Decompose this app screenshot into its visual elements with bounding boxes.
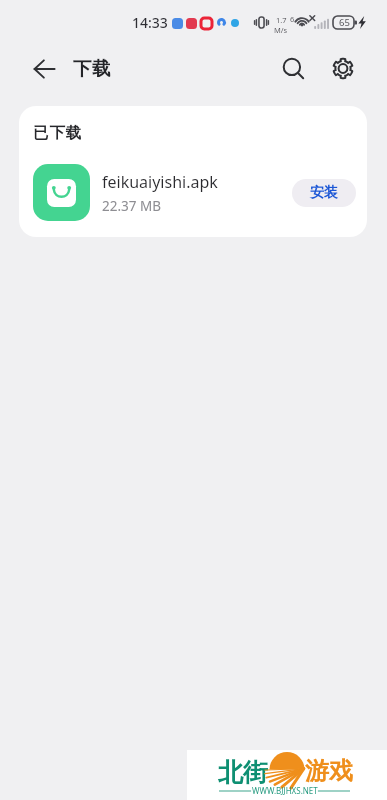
button[interactable]: 安装: [292, 179, 356, 207]
staticText: feikuaiyishi.apk: [102, 171, 218, 193]
staticText: 65: [339, 16, 350, 29]
staticText: 北街: [218, 757, 268, 788]
staticText: 1.7: [276, 15, 287, 25]
staticText: M/s: [274, 25, 288, 35]
staticText: 安装: [310, 184, 338, 202]
button[interactable]: Search: [272, 47, 315, 90]
staticText: 已下载: [33, 123, 83, 143]
staticText: 22.37 MB: [102, 197, 162, 215]
staticText: 下载: [73, 57, 112, 80]
button[interactable]: Back: [23, 48, 65, 90]
staticText: WWW.BJJHXS.NET: [252, 785, 318, 796]
staticText: 游戏: [305, 756, 353, 786]
staticText: 6: [290, 14, 295, 24]
staticText: 14:33: [132, 13, 168, 32]
button[interactable]: Settings: [321, 47, 364, 90]
button[interactable]: feikuaiyishi.apk: [19, 156, 367, 229]
